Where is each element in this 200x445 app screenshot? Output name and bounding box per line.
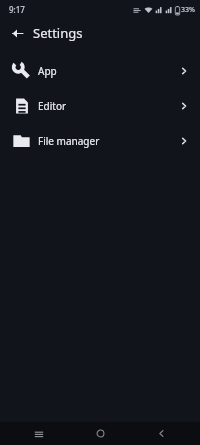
button[interactable]: Home: [83, 422, 117, 445]
staticText: Editor: [38, 99, 67, 113]
staticText: File manager: [38, 134, 100, 148]
staticText: Settings: [33, 24, 83, 42]
button[interactable]: App: [0, 53, 200, 88]
button[interactable]: File manager: [0, 123, 200, 158]
button[interactable]: Recent apps: [22, 422, 56, 445]
staticText: 33%: [181, 5, 195, 15]
button[interactable]: Back: [5, 21, 29, 45]
button[interactable]: Back: [144, 422, 178, 445]
staticText: App: [38, 64, 57, 78]
button[interactable]: Editor: [0, 88, 200, 123]
staticText: 9:17: [9, 4, 25, 15]
